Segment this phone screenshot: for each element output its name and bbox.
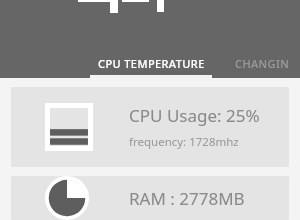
button[interactable]: RAM usage — [11, 176, 289, 220]
other: RAM usage — [45, 176, 93, 220]
button[interactable]: CPU TEMPERATURE — [90, 48, 213, 78]
staticText: frequency: 1728mhz — [129, 134, 239, 150]
staticText: CPU TEMPERATURE — [98, 56, 205, 71]
button[interactable]: CPU usage — [11, 87, 289, 167]
staticText: CPU Usage: 25% — [129, 104, 260, 127]
staticText: RAM : 2778MB — [129, 187, 245, 210]
staticText: CHANGING CURRENT — [235, 56, 292, 71]
other: CPU usage — [45, 103, 93, 151]
button[interactable]: CHANGING CURRENT — [227, 48, 300, 78]
